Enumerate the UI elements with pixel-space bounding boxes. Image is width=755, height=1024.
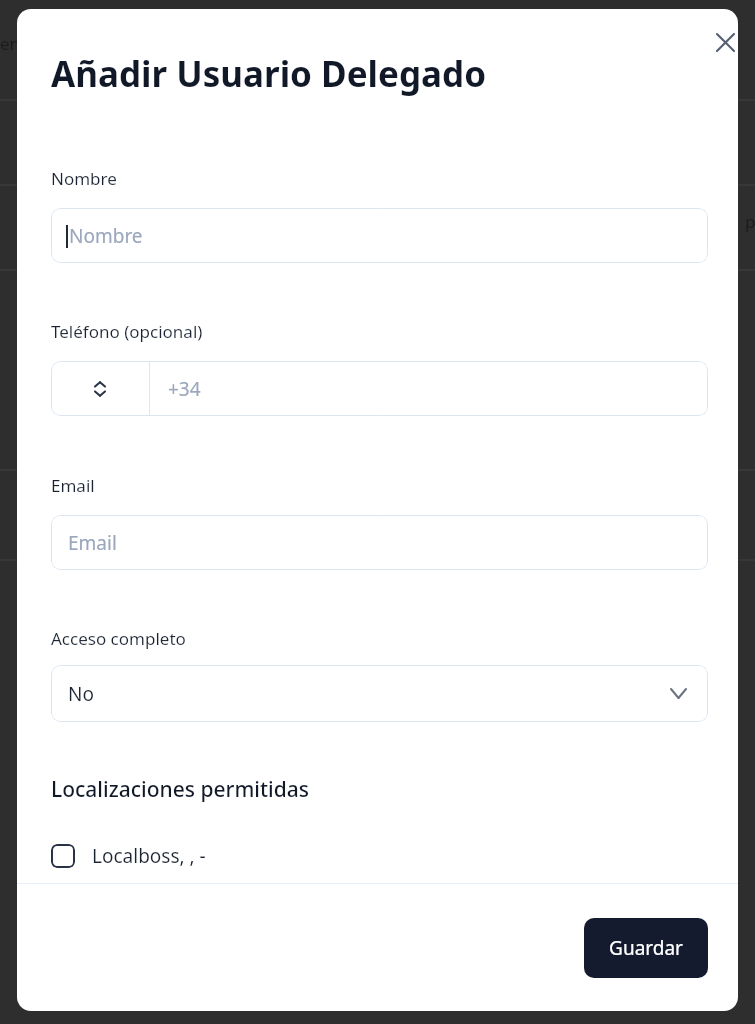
button[interactable]: Localboss, , - xyxy=(45,827,305,885)
button[interactable]: No xyxy=(51,665,708,722)
staticText: p xyxy=(745,210,755,233)
staticText: +34 xyxy=(168,376,201,402)
staticText: Guardar xyxy=(609,935,683,961)
staticText: Email xyxy=(51,474,95,497)
staticText: Acceso completo xyxy=(51,627,186,650)
staticText: Teléfono (opcional) xyxy=(51,320,203,343)
button[interactable]: Cerrar xyxy=(703,20,738,64)
staticText: Email xyxy=(68,530,117,556)
button[interactable]: Nombre xyxy=(51,208,708,263)
staticText: No xyxy=(68,681,94,707)
staticText: Nombre xyxy=(69,223,143,249)
button[interactable]: Seleccionar país xyxy=(51,361,149,416)
staticText: Localboss, , - xyxy=(92,843,206,869)
button[interactable]: Email xyxy=(51,515,708,570)
button[interactable]: Guardar xyxy=(584,918,708,978)
staticText: Nombre xyxy=(51,167,117,190)
button[interactable]: +34 xyxy=(150,361,708,416)
staticText: en xyxy=(0,32,21,55)
staticText: Localizaciones permitidas xyxy=(51,775,309,804)
staticText: Añadir Usuario Delegado xyxy=(51,50,487,98)
